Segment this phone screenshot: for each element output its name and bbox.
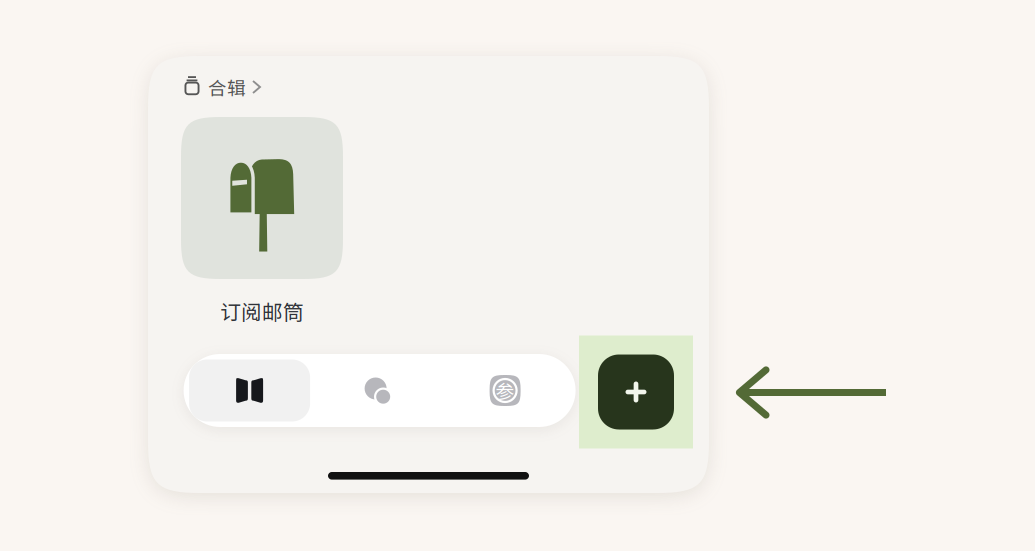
button[interactable]: Library	[189, 359, 310, 421]
button[interactable]: Profile	[440, 360, 570, 421]
staticText: 参	[496, 377, 515, 404]
button[interactable]: Discover	[310, 360, 440, 421]
staticText: 订阅邮筒	[220, 296, 304, 326]
button[interactable]: 合辑	[183, 75, 260, 99]
staticText: 合辑	[208, 73, 246, 100]
button[interactable]: Add	[598, 354, 674, 429]
